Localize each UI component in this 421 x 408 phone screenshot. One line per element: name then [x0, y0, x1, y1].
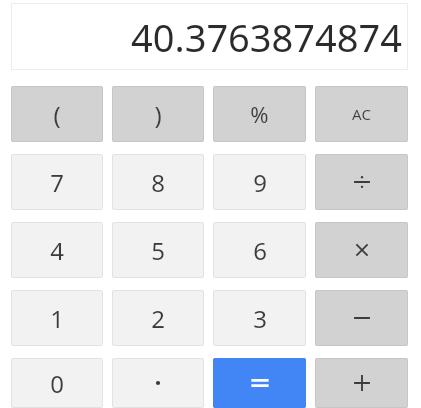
staticText: %: [250, 99, 269, 129]
staticText: 1: [50, 302, 64, 335]
button[interactable]: 4: [11, 222, 103, 278]
staticText: ): [154, 98, 162, 131]
staticText: 40.3763874874: [130, 11, 402, 63]
button[interactable]: 6: [213, 222, 306, 278]
staticText: 8: [151, 166, 165, 199]
staticText: 2: [151, 302, 165, 335]
staticText: 0: [50, 367, 64, 400]
button[interactable]: 8: [112, 154, 204, 210]
staticText: (: [53, 98, 61, 131]
button[interactable]: 0: [11, 358, 103, 408]
button[interactable]: ): [112, 86, 204, 142]
staticText: 9: [253, 166, 267, 199]
button[interactable]: Add: [315, 358, 408, 408]
staticText: 5: [151, 234, 165, 267]
button[interactable]: 7: [11, 154, 103, 210]
button[interactable]: AC: [315, 86, 408, 142]
button[interactable]: 1: [11, 290, 103, 346]
button[interactable]: 3: [213, 290, 306, 346]
button[interactable]: 9: [213, 154, 306, 210]
button[interactable]: Decimal point: [112, 358, 204, 408]
button[interactable]: Divide: [315, 154, 408, 210]
staticText: 7: [50, 166, 64, 199]
staticText: AC: [352, 104, 371, 124]
button[interactable]: (: [11, 86, 103, 142]
button[interactable]: Equals: [213, 358, 306, 408]
button[interactable]: 5: [112, 222, 204, 278]
staticText: 6: [253, 234, 267, 267]
button[interactable]: Multiply: [315, 222, 408, 278]
staticText: 3: [253, 302, 267, 335]
button[interactable]: Subtract: [315, 290, 408, 346]
staticText: 4: [50, 234, 64, 267]
button[interactable]: %: [213, 86, 306, 142]
button[interactable]: 2: [112, 290, 204, 346]
